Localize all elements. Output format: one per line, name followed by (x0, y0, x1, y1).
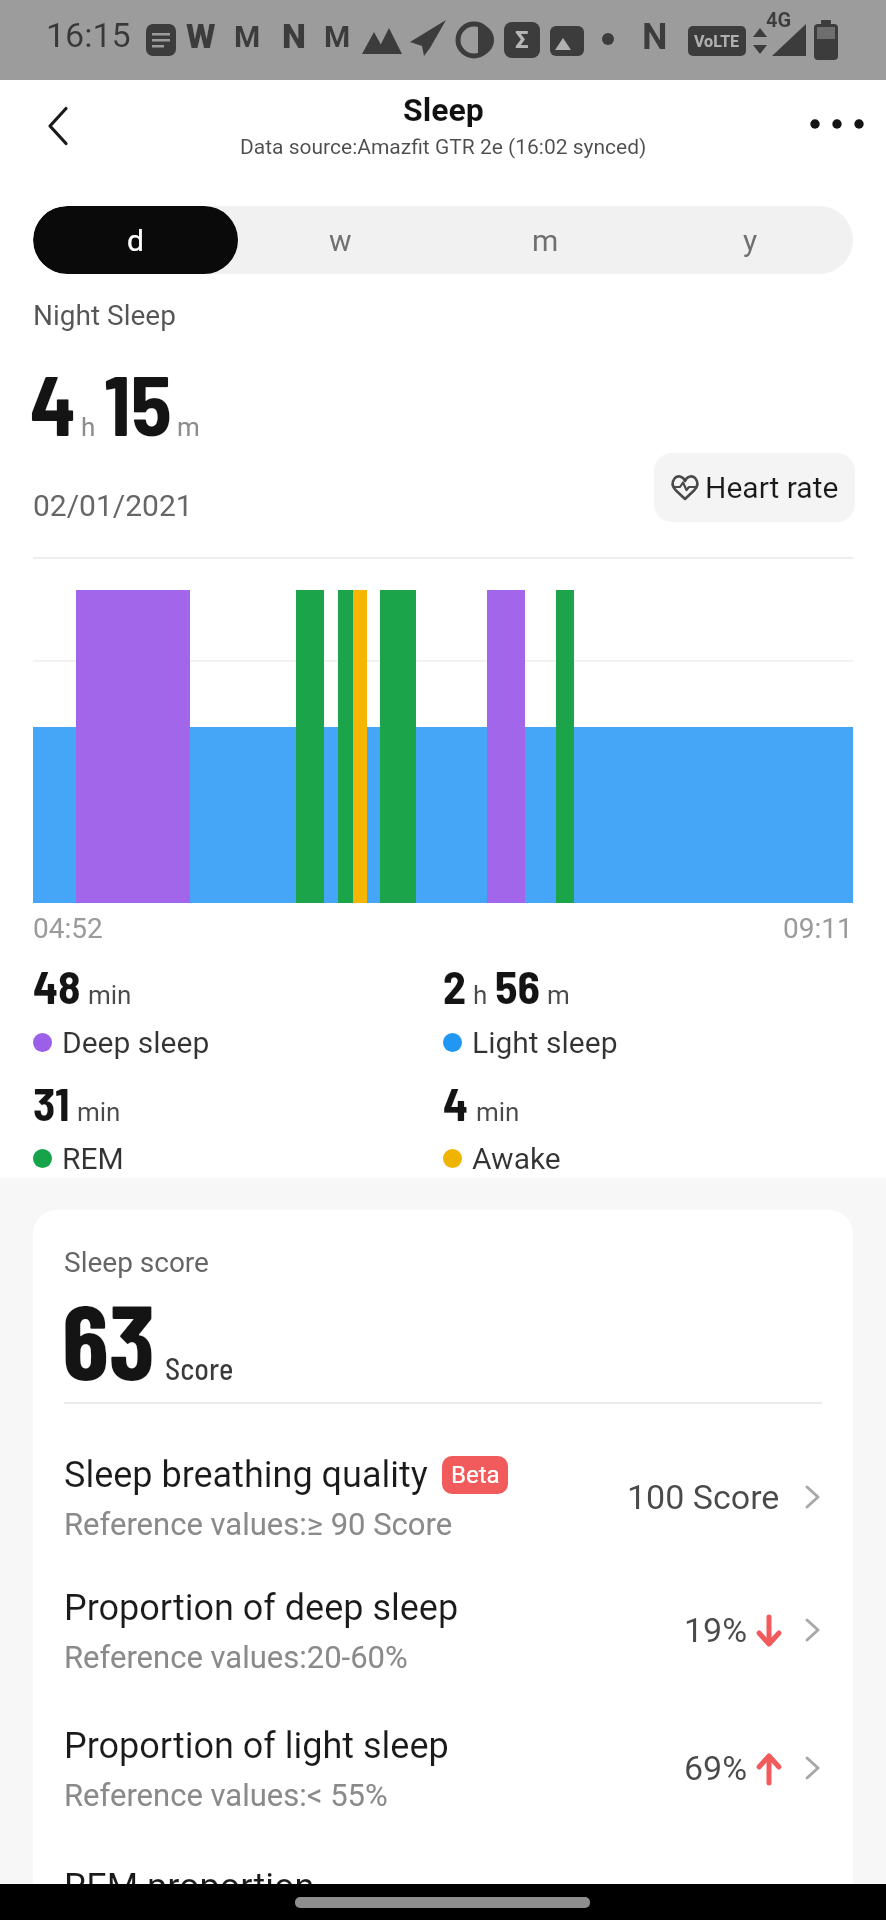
staticText: Proportion of light sleep (64, 1725, 449, 1767)
staticText: Light sleep (472, 1025, 618, 1060)
staticText: REM proportion (64, 1866, 315, 1908)
staticText: min (77, 1097, 121, 1127)
staticText: 56 (495, 958, 540, 1013)
staticText: Reference values:20-60% (64, 1639, 408, 1675)
staticText: W (186, 16, 216, 56)
staticText: 63 (62, 1274, 155, 1401)
staticText: Score (165, 1350, 234, 1386)
staticText: 09:11 (783, 912, 853, 945)
staticText: 2 (443, 958, 466, 1013)
button[interactable]: Heart rate (654, 453, 855, 522)
button[interactable]: y (648, 206, 853, 274)
staticText: m (177, 412, 200, 442)
staticText: REM (62, 1141, 124, 1176)
staticText: min (476, 1097, 520, 1127)
staticText: 04:52 (33, 912, 103, 945)
staticText: 4G (766, 8, 792, 31)
staticText: M (234, 19, 261, 54)
staticText: 100 Score (627, 1477, 780, 1517)
staticText: Reference values:≥ 90 Score (64, 1506, 453, 1542)
staticText: m (547, 980, 570, 1010)
staticText: y (743, 223, 758, 258)
staticText: Σ (515, 26, 529, 54)
staticText: 15 (104, 352, 172, 453)
staticText: Night Sleep (33, 299, 176, 332)
button[interactable] (33, 1850, 853, 1920)
staticText: Heart rate (705, 470, 839, 505)
staticText: 19% (684, 1610, 748, 1650)
button[interactable] (24, 96, 88, 160)
staticText: h (473, 980, 488, 1010)
staticText: 02/01/2021 (33, 488, 193, 523)
staticText: d (127, 223, 144, 258)
staticText: 48 (33, 958, 81, 1013)
staticText: h (81, 412, 96, 442)
staticText: Sleep (403, 91, 484, 129)
staticText: N (282, 16, 306, 56)
staticText: M (324, 19, 351, 54)
staticText: Data source:Amazfit GTR 2e (16:02 synced… (240, 135, 647, 160)
staticText: Beta (451, 1461, 500, 1489)
staticText: min (88, 980, 132, 1010)
staticText: N (642, 16, 668, 58)
staticText: w (329, 223, 352, 258)
button[interactable] (33, 1577, 853, 1687)
staticText: 4 (443, 1075, 469, 1130)
staticText: 69% (684, 1748, 748, 1788)
staticText: Reference values:< 55% (64, 1777, 388, 1813)
staticText: Sleep score (64, 1246, 209, 1279)
staticText: 4 (30, 352, 76, 453)
staticText: VoLTE (694, 32, 740, 51)
button[interactable]: d (33, 206, 238, 274)
button[interactable]: w (238, 206, 443, 274)
staticText: 31 (33, 1075, 70, 1130)
button[interactable] (33, 1444, 853, 1554)
button[interactable] (33, 1715, 853, 1825)
staticText: Awake (472, 1141, 561, 1176)
staticText: Proportion of deep sleep (64, 1587, 459, 1629)
staticText: m (532, 223, 559, 258)
button[interactable] (800, 94, 872, 154)
staticText: Sleep breathing quality (64, 1454, 428, 1496)
staticText: Deep sleep (62, 1025, 210, 1060)
button[interactable]: m (443, 206, 648, 274)
staticText: 16:15 (46, 15, 131, 55)
